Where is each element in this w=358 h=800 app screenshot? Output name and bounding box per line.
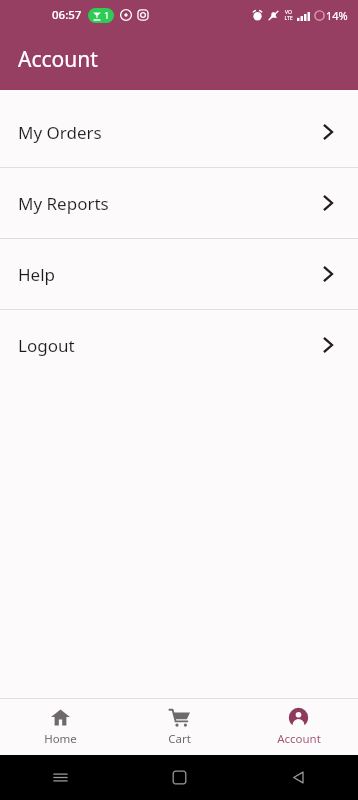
button[interactable]: Home <box>0 701 120 753</box>
staticText: 14% <box>326 8 348 23</box>
staticText: 1 <box>104 9 110 22</box>
staticText: Help <box>18 263 318 286</box>
staticText: Home <box>44 731 77 747</box>
staticText: 06:57 <box>52 7 82 23</box>
staticText: VO LTE <box>284 9 293 22</box>
button[interactable]: Logout <box>0 310 358 380</box>
other: Home <box>172 770 187 785</box>
button[interactable]: My Reports <box>0 168 358 238</box>
staticText: Account <box>18 45 98 74</box>
staticText: Account <box>277 731 321 747</box>
button[interactable]: Help <box>0 239 358 309</box>
button[interactable]: Cart <box>120 701 239 753</box>
button[interactable]: My Orders <box>0 97 358 167</box>
staticText: Cart <box>168 731 191 747</box>
button[interactable]: Account <box>239 701 358 753</box>
staticText: My Orders <box>18 121 318 144</box>
other: Recent apps <box>52 769 69 786</box>
staticText: My Reports <box>18 192 318 215</box>
staticText: Logout <box>18 334 318 357</box>
other: Back <box>291 770 306 785</box>
